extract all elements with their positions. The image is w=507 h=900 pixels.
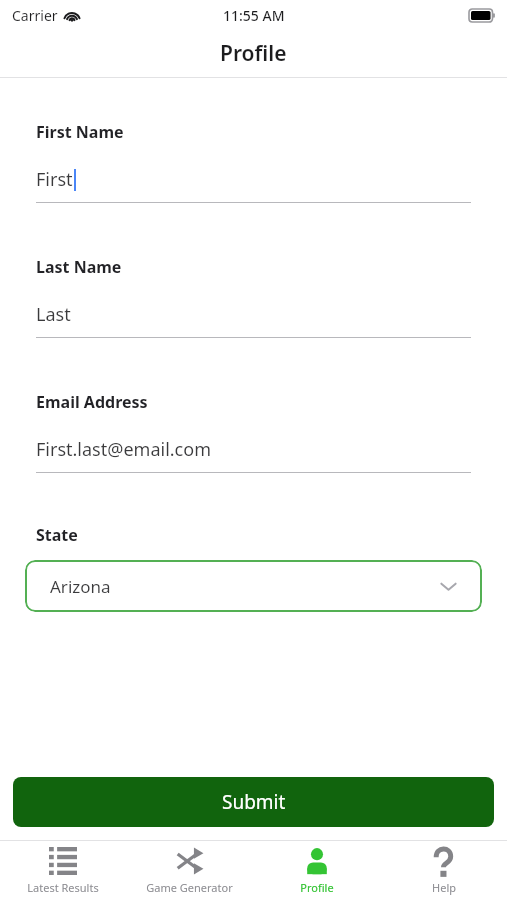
button[interactable]: First Name [36, 121, 471, 203]
staticText: Help [432, 880, 456, 895]
staticText: Email Address [36, 391, 148, 413]
staticText: Arizona [50, 575, 111, 598]
staticText: 11:55 AM [223, 6, 285, 25]
staticText: First.last@email.com [36, 437, 211, 462]
button[interactable]: Last Name [36, 256, 471, 338]
staticText: Last [36, 302, 71, 327]
staticText: First [36, 167, 73, 192]
staticText: State [36, 524, 78, 546]
button[interactable]: Latest Results [0, 841, 126, 900]
button[interactable]: Help [380, 841, 507, 900]
staticText: Submit [222, 789, 286, 815]
staticText: Last Name [36, 256, 122, 278]
button[interactable]: Arizona [25, 560, 482, 612]
button[interactable]: Game Generator [126, 841, 253, 900]
staticText: First Name [36, 121, 124, 143]
staticText: Carrier [12, 6, 58, 25]
staticText: Game Generator [146, 880, 233, 895]
button[interactable]: Submit [13, 777, 494, 827]
staticText: Profile [220, 39, 287, 68]
button[interactable]: Email Address [36, 391, 471, 473]
staticText: Profile [300, 880, 334, 895]
button[interactable]: Profile [253, 841, 380, 900]
staticText: Latest Results [27, 880, 99, 895]
